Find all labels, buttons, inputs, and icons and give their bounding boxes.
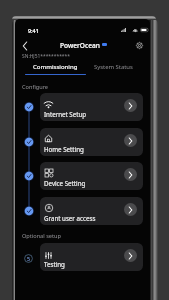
button[interactable]: Commissioning <box>25 61 86 76</box>
button[interactable]: Internet Setup <box>40 93 143 121</box>
button[interactable]: Settings <box>132 38 146 52</box>
staticText: Optional setup <box>22 232 61 240</box>
button[interactable]: Device Setting <box>124 168 137 181</box>
staticText: PowerOcean <box>60 41 100 48</box>
button[interactable]: Home Setting <box>40 128 143 156</box>
button[interactable]: Back <box>18 39 32 53</box>
staticText: Internet Setup <box>44 110 87 118</box>
staticText: System Status <box>94 63 133 71</box>
staticText: Configure <box>22 83 48 91</box>
button[interactable]: Device Setting <box>40 162 143 190</box>
staticText: 9:41 <box>28 27 39 34</box>
staticText: Commissioning <box>33 62 78 70</box>
button[interactable]: Testing <box>124 249 137 262</box>
button[interactable]: Grant user access <box>124 203 137 216</box>
staticText: Testing <box>44 260 65 268</box>
button[interactable]: Grant user access <box>40 197 143 225</box>
staticText: 5 <box>27 255 30 262</box>
staticText: Device Setting <box>44 179 86 187</box>
staticText: Home Setting <box>44 145 84 153</box>
button[interactable]: Testing <box>40 243 143 271</box>
staticText: SN:HJ51*********** <box>22 53 70 60</box>
button[interactable]: System Status <box>86 61 140 76</box>
staticText: Grant user access <box>44 214 96 222</box>
button[interactable]: Internet Setup <box>124 99 137 112</box>
button[interactable]: Home Setting <box>124 134 137 147</box>
